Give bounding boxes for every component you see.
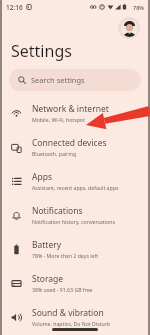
staticText: Apps (32, 171, 52, 183)
staticText: Network & internet (32, 103, 109, 115)
button[interactable]: Network & internet (0, 96, 150, 130)
staticText: Notifications (32, 205, 83, 217)
staticText: Notification history, conversations (32, 218, 116, 225)
button[interactable]: Notifications (0, 198, 150, 232)
staticText: Search settings (31, 75, 85, 85)
button[interactable]: Sound & vibration (0, 300, 150, 334)
staticText: Volume, haptics, Do Not Disturb (32, 320, 111, 327)
button[interactable]: Account (118, 17, 140, 39)
staticText: Sound & vibration (32, 307, 104, 319)
staticText: Bluetooth, pairing (32, 150, 77, 157)
button[interactable]: Storage (0, 266, 150, 300)
staticText: Battery (32, 239, 62, 251)
staticText: 78% - More than 2 days left (32, 252, 99, 259)
staticText: Mobile, Wi-Fi, hotspot (32, 116, 85, 123)
button[interactable]: Connected devices (0, 130, 150, 164)
button[interactable]: Apps (0, 164, 150, 198)
button[interactable]: Battery (0, 232, 150, 266)
staticText: 12:16 (6, 3, 23, 12)
staticText: Connected devices (32, 137, 107, 149)
staticText: 78% (133, 4, 144, 11)
staticText: Settings (11, 40, 72, 62)
staticText: 38% used - 91.63 GB free (32, 286, 93, 293)
button[interactable]: Search settings (9, 69, 141, 91)
staticText: Assistant, recent apps, default apps (32, 184, 119, 191)
staticText: Storage (32, 273, 64, 285)
